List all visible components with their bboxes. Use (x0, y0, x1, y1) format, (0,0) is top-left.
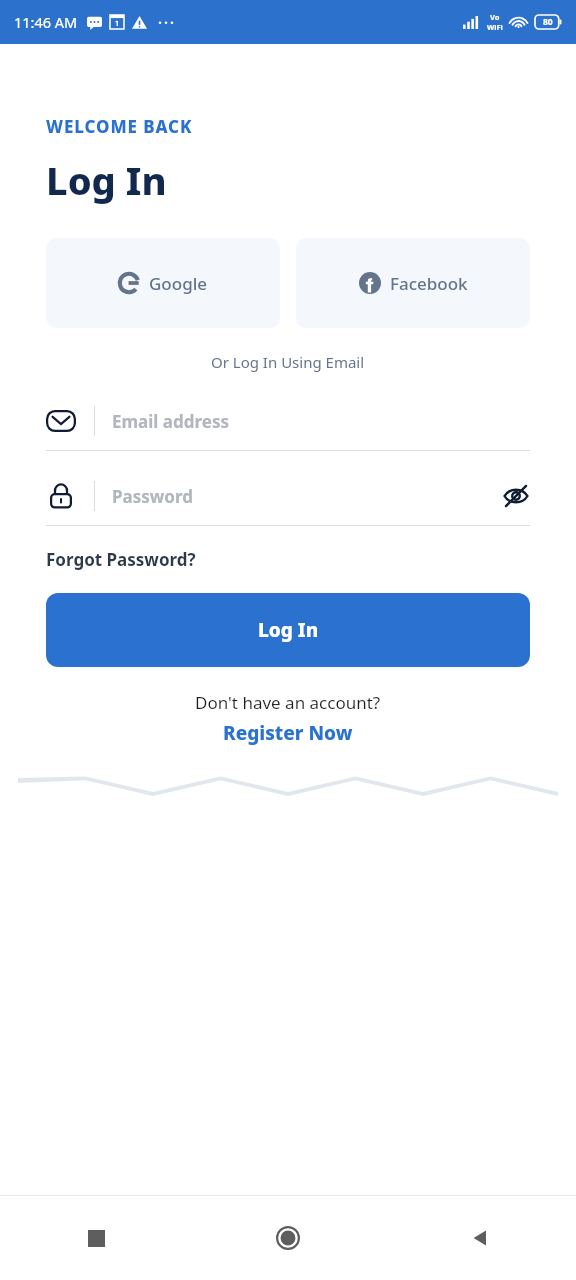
staticText: Email address (112, 410, 229, 433)
button[interactable]: Facebook (296, 238, 530, 328)
staticText: Google (149, 272, 208, 295)
staticText: Don't have an account? (195, 691, 381, 714)
button[interactable]: Register Now (223, 720, 353, 746)
button[interactable]: Back (384, 1196, 576, 1280)
button[interactable]: Recent apps (0, 1196, 192, 1280)
button[interactable]: Email address (46, 396, 530, 451)
staticText: Password (112, 485, 193, 508)
staticText: Facebook (390, 272, 468, 295)
button[interactable]: Google (46, 238, 280, 328)
staticText: 11:46 AM (14, 12, 78, 32)
staticText: WELCOME BACK (46, 115, 193, 138)
staticText: Forgot Password? (46, 548, 196, 571)
staticText: Vo (490, 12, 500, 22)
staticText: Or Log In Using Email (211, 352, 365, 372)
staticText: Log In (258, 617, 319, 643)
button[interactable]: Home (192, 1196, 384, 1280)
staticText: Log In (46, 154, 167, 206)
button[interactable]: Toggle password visibility (502, 482, 530, 510)
button[interactable]: Password (46, 471, 530, 526)
staticText: Register Now (223, 720, 353, 746)
staticText: 80 (543, 16, 553, 28)
button[interactable]: Forgot Password? (46, 548, 196, 571)
button[interactable]: Log In (46, 593, 530, 667)
staticText: WiFi (487, 22, 503, 32)
